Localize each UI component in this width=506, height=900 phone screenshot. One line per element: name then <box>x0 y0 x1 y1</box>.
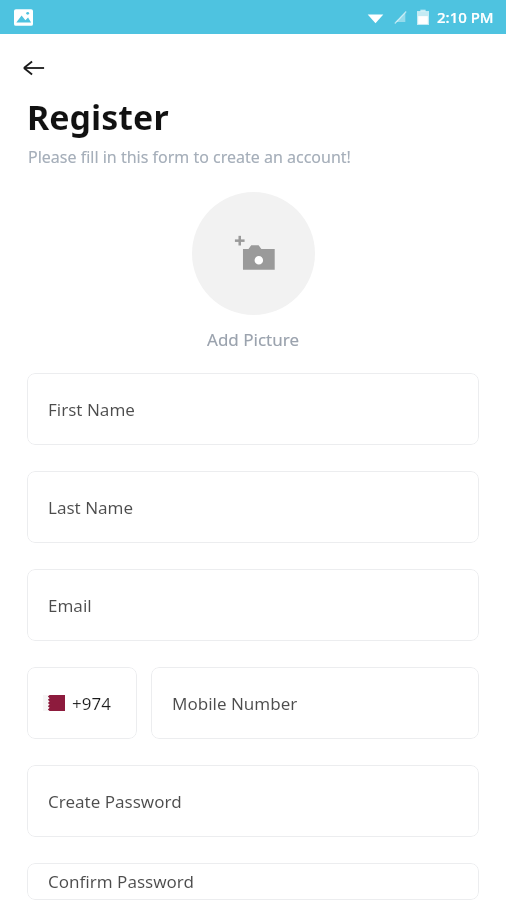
staticText: Last Name <box>48 496 134 519</box>
staticText: First Name <box>48 398 135 421</box>
staticText: Add Picture <box>207 328 299 351</box>
staticText: Email <box>48 594 92 617</box>
button[interactable]: Create Password <box>27 765 479 837</box>
staticText: Confirm Password <box>48 870 194 893</box>
staticText: Please fill in this form to create an ac… <box>28 146 351 168</box>
staticText: 2:10 PM <box>437 7 494 27</box>
staticText: Create Password <box>48 790 182 813</box>
staticText: Mobile Number <box>172 692 298 715</box>
button[interactable]: Back <box>14 48 54 88</box>
button[interactable]: Email <box>27 569 479 641</box>
button[interactable]: +974 <box>27 667 137 739</box>
button[interactable]: Mobile Number <box>151 667 479 739</box>
staticText: Register <box>27 94 169 140</box>
button[interactable]: First Name <box>27 373 479 445</box>
button[interactable]: Confirm Password <box>27 863 479 900</box>
staticText: +974 <box>72 692 111 715</box>
button[interactable]: Add Picture <box>192 192 315 315</box>
button[interactable]: Last Name <box>27 471 479 543</box>
